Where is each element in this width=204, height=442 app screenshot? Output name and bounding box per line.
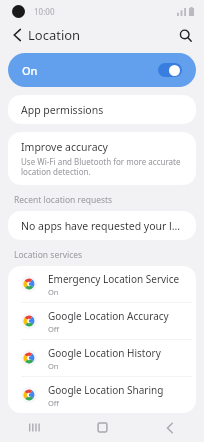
button[interactable]: Emergency Location Service [8,266,196,302]
button[interactable]: Recents [0,413,68,442]
button[interactable]: Google Location History [8,340,196,376]
staticText: Use Wi-Fi and Bluetooth for more accurat… [21,156,183,177]
staticText: Recent location requests [14,194,113,206]
button[interactable]: Back [6,24,28,46]
button[interactable]: Google Location Sharing [8,377,196,413]
button[interactable]: Home [68,413,136,442]
button[interactable]: On [8,53,196,87]
staticText: Off [48,398,60,408]
button[interactable]: Search [174,24,196,46]
staticText: Google Location Accuracy [48,309,169,323]
staticText: 10:00 [34,6,55,17]
button[interactable]: Back [136,413,204,442]
staticText: On [22,63,38,78]
staticText: On [48,287,59,297]
button[interactable]: Improve accuracy [8,132,196,185]
staticText: Off [48,324,60,334]
button[interactable]: No apps have requested your location r.. [8,211,196,240]
staticText: Improve accuracy [21,140,108,154]
staticText: App permissions [21,103,104,117]
staticText: Location [28,26,81,44]
staticText: Location services [14,249,83,261]
staticText: Google Location Sharing [48,383,164,397]
staticText: On [48,361,59,371]
button[interactable]: Google Location Accuracy [8,303,196,339]
staticText: Google Location History [48,346,161,360]
button[interactable]: App permissions [8,95,196,124]
staticText: No apps have requested your location r.. [21,219,183,233]
staticText: Emergency Location Service [48,272,180,286]
